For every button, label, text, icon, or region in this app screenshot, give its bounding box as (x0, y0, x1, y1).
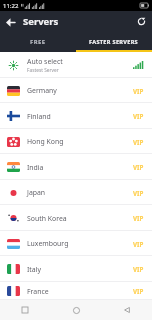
staticText: VIP (133, 138, 144, 146)
staticText: FASTER SERVERS (89, 38, 139, 46)
button[interactable]: FREE (0, 32, 76, 52)
button[interactable]: South Korea (0, 205, 152, 231)
staticText: Luxembourg (27, 239, 125, 248)
button[interactable]: Recents (18, 303, 32, 317)
staticText: VIP (133, 87, 144, 95)
button[interactable]: FASTER SERVERS (76, 32, 152, 52)
staticText: France (27, 287, 125, 296)
staticText: Italy (27, 265, 125, 274)
staticText: VIP (133, 189, 144, 197)
button[interactable]: Refresh (132, 13, 150, 31)
staticText: VIP (133, 214, 144, 222)
staticText: Germany (27, 86, 125, 95)
button[interactable]: Japan (0, 180, 152, 205)
staticText: VIP (133, 112, 144, 120)
staticText: VIP (133, 240, 144, 248)
button[interactable]: Back (120, 303, 134, 317)
staticText: VIP (133, 287, 144, 295)
staticText: VIP (133, 265, 144, 273)
staticText: 11:22 (3, 2, 19, 10)
button[interactable]: Home (69, 303, 83, 317)
staticText: Auto select (27, 57, 63, 66)
button[interactable]: Back (0, 12, 20, 32)
staticText: Finland (27, 112, 125, 121)
staticText: Servers (23, 15, 59, 28)
button[interactable]: Auto select (0, 52, 152, 78)
staticText: India (27, 163, 125, 172)
button[interactable]: France (0, 282, 152, 300)
staticText: South Korea (27, 214, 125, 223)
staticText: Fastest Server (27, 67, 59, 74)
staticText: Japan (27, 188, 125, 197)
button[interactable]: Italy (0, 256, 152, 282)
staticText: Hong Kong (27, 137, 125, 146)
button[interactable]: Hong Kong (0, 129, 152, 154)
button[interactable]: Luxembourg (0, 231, 152, 256)
staticText: VIP (133, 163, 144, 171)
button[interactable]: Germany (0, 78, 152, 103)
staticText: FREE (30, 38, 46, 46)
button[interactable]: Finland (0, 103, 152, 129)
button[interactable]: India (0, 154, 152, 180)
